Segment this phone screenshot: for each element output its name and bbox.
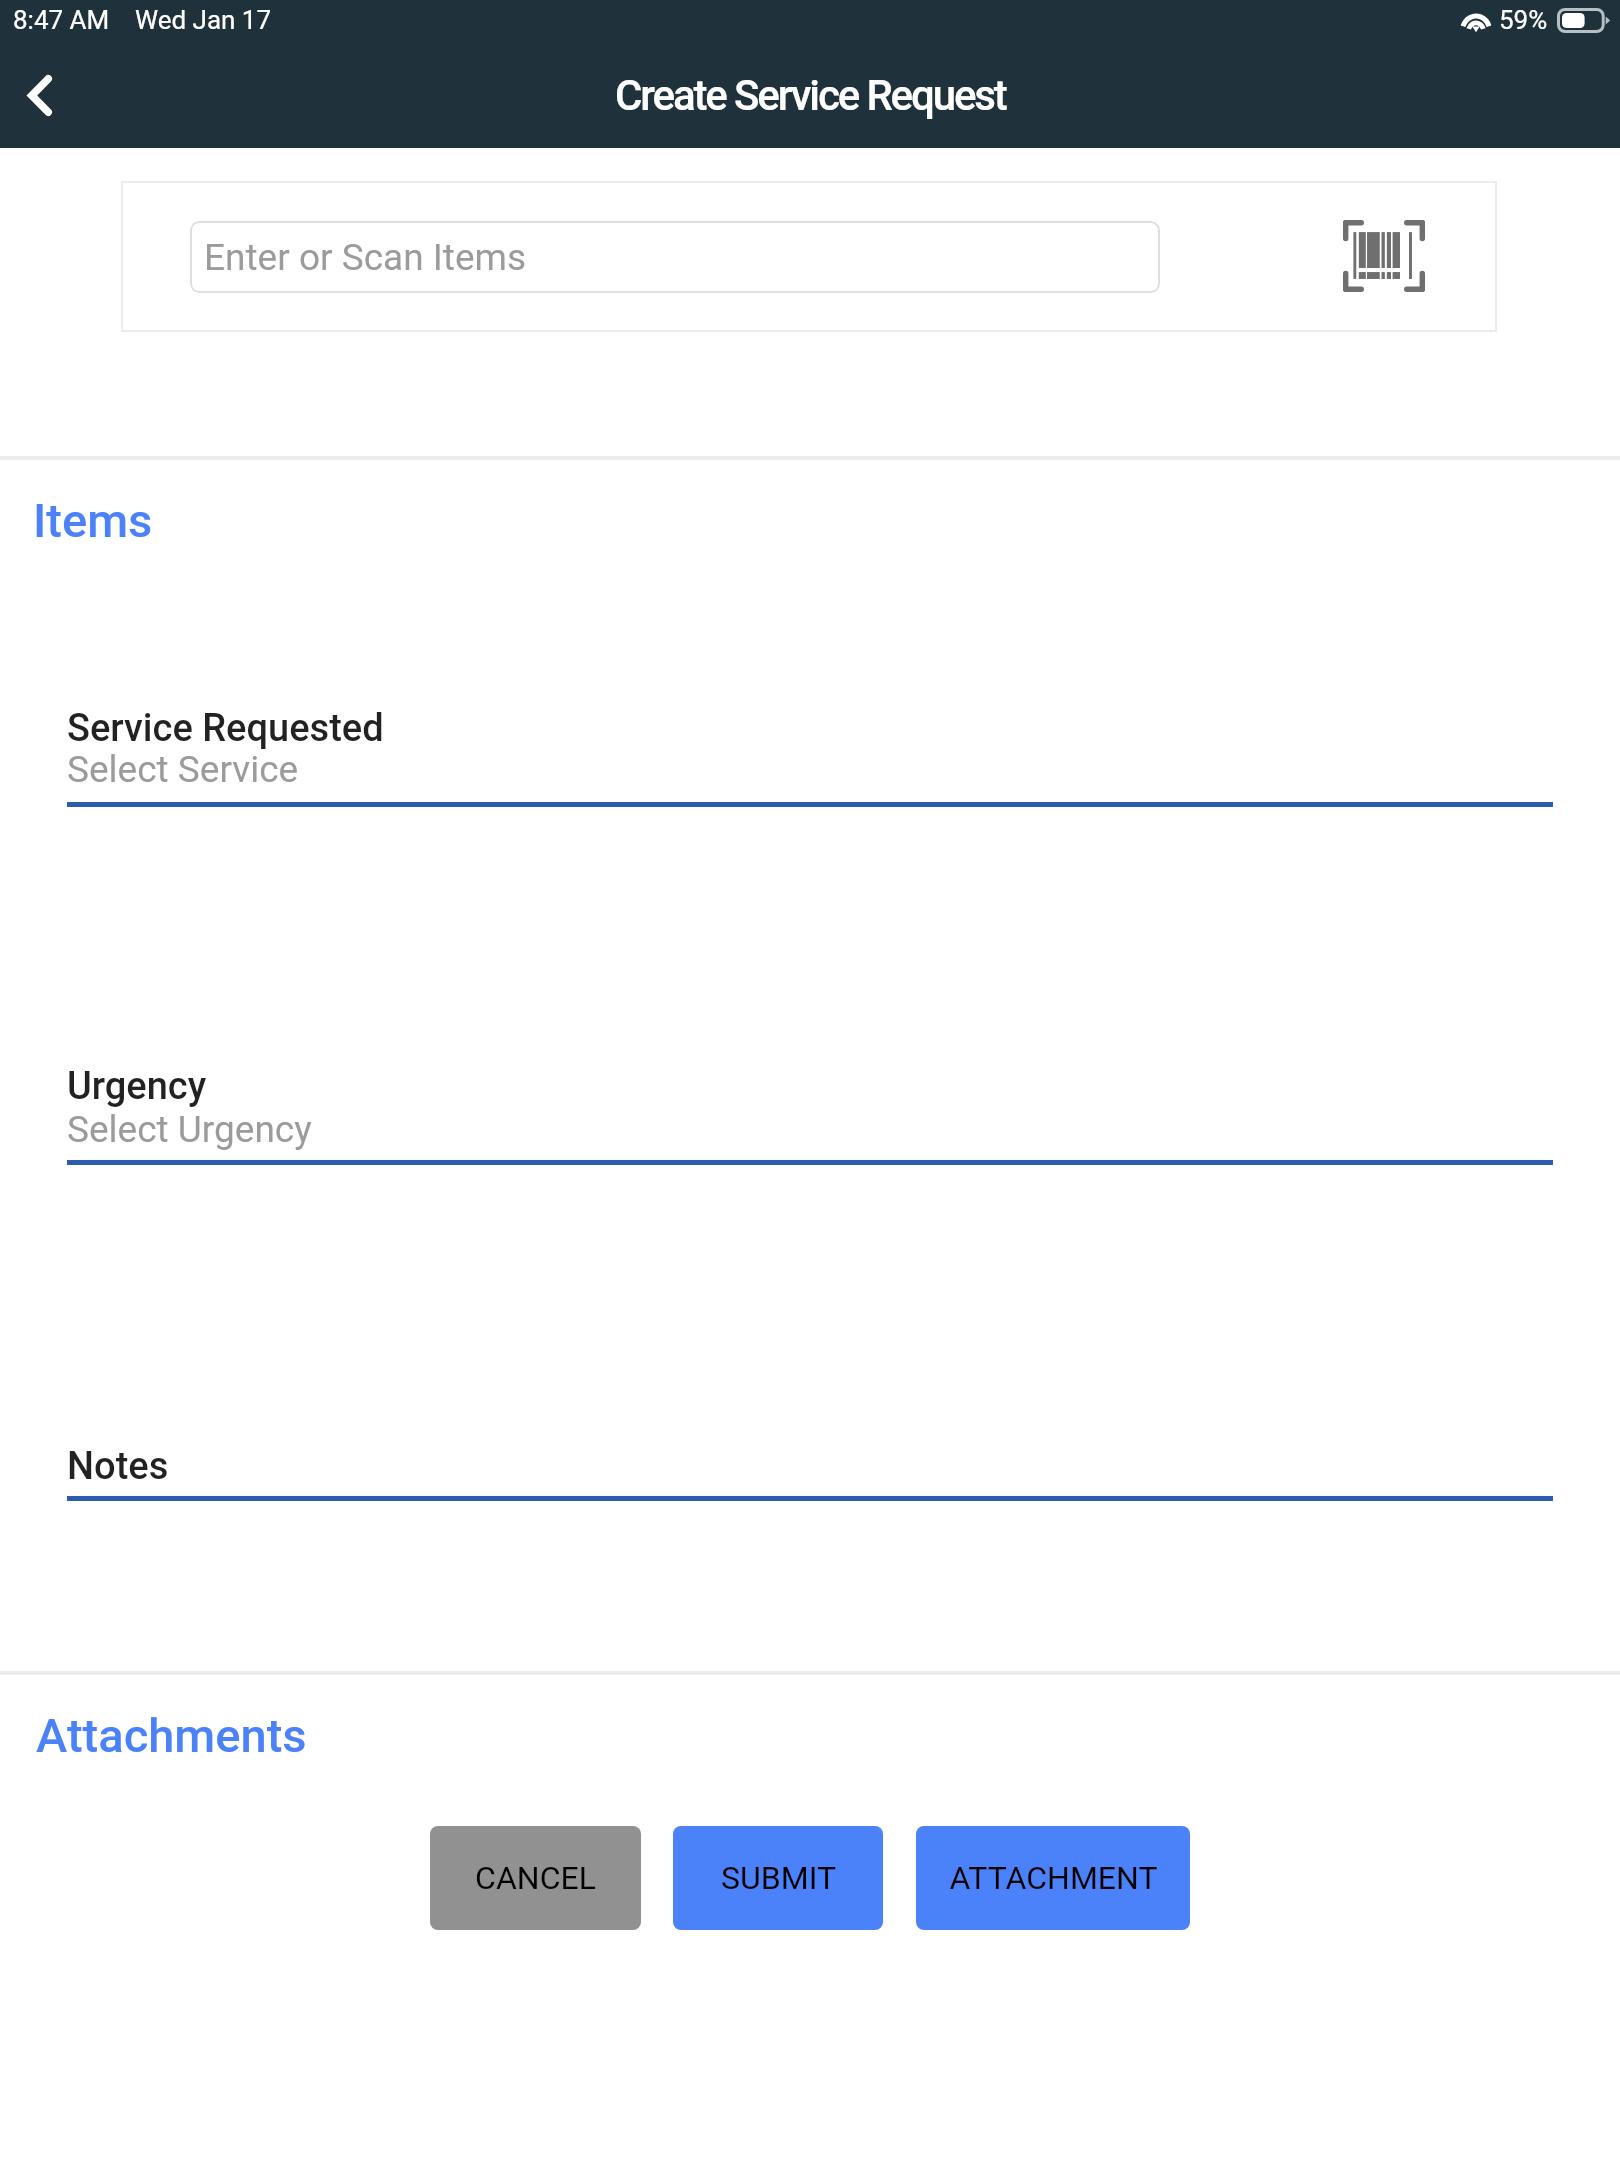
staticText: Create Service Request [615, 71, 1006, 120]
button[interactable]: Enter or Scan Items [190, 221, 1160, 293]
staticText: Service Requested [67, 706, 384, 751]
staticText: 59% [1499, 5, 1548, 35]
button[interactable]: Back [0, 52, 80, 138]
button[interactable]: Notes [67, 1444, 1553, 1501]
button[interactable]: Urgency [67, 1064, 1553, 1165]
staticText: Select Urgency [67, 1108, 312, 1151]
button[interactable]: Scan barcode [1329, 201, 1439, 311]
button[interactable]: SUBMIT [673, 1826, 883, 1930]
staticText: Attachments [36, 1708, 307, 1763]
button[interactable]: CANCEL [430, 1826, 641, 1930]
staticText: Notes [67, 1444, 169, 1489]
button[interactable]: Service Requested [67, 706, 1553, 807]
staticText: Items [33, 493, 153, 548]
staticText: Enter or Scan Items [204, 236, 527, 279]
button[interactable]: ATTACHMENT [916, 1826, 1190, 1930]
staticText: Urgency [67, 1064, 207, 1109]
staticText: CANCEL [475, 1859, 596, 1897]
staticText: 8:47 AM [13, 5, 110, 35]
staticText: SUBMIT [721, 1859, 836, 1897]
staticText: Wed Jan 17 [135, 5, 272, 35]
staticText: ATTACHMENT [949, 1859, 1158, 1897]
staticText: Select Service [67, 748, 299, 791]
